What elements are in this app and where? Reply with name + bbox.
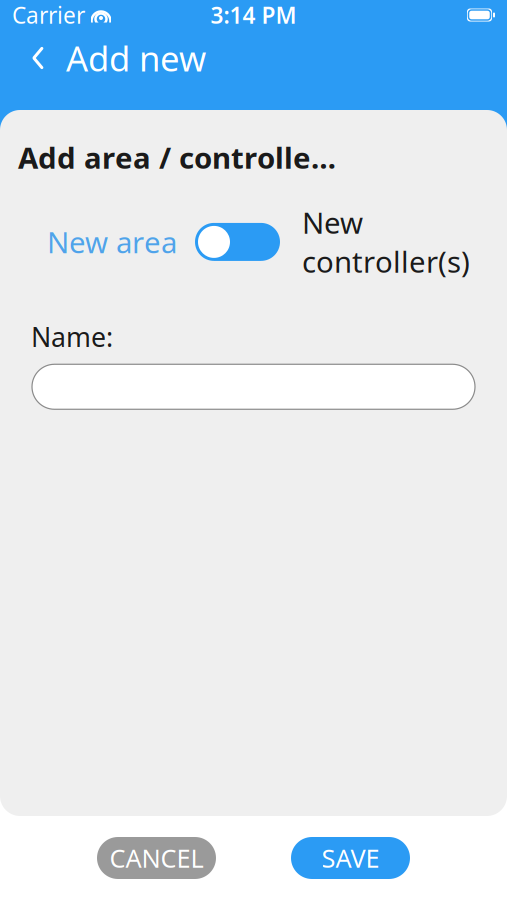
button[interactable]: Back to previous screen, Add new [0,30,220,86]
staticText: Name: [31,319,113,354]
staticText: Add new [66,35,206,81]
button[interactable]: CANCEL [97,837,216,879]
button[interactable]: Toggle between new area and new controll… [195,223,280,261]
staticText: Carrier [12,0,85,30]
staticText: Add area / controlle… [18,138,336,177]
button[interactable]: Name text field [32,364,475,409]
staticText: CANCEL [109,841,203,875]
staticText: SAVE [321,841,379,875]
staticText: New area [47,222,177,261]
button[interactable]: SAVE [291,837,410,879]
staticText: 3:14 PM [210,0,296,30]
staticText: New controller(s) [302,203,470,281]
